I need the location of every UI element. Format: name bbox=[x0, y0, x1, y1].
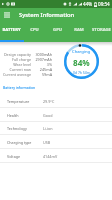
staticText: 4144mV bbox=[43, 154, 112, 159]
button[interactable]: BATTERY bbox=[0, 22, 23, 40]
staticText: Health bbox=[7, 113, 43, 118]
staticText: Temperature bbox=[7, 99, 43, 104]
staticText: 09:54 bbox=[98, 1, 110, 7]
button[interactable]: Health bbox=[0, 108, 112, 122]
button[interactable]: STORAGE bbox=[90, 22, 112, 40]
staticText: RAM bbox=[74, 27, 84, 33]
staticText: Li-ion bbox=[43, 126, 112, 131]
staticText: Full charge bbox=[0, 57, 31, 62]
staticText: BATTERY bbox=[2, 27, 21, 33]
staticText: 3% bbox=[34, 62, 52, 67]
staticText: Charging type bbox=[7, 140, 43, 145]
staticText: Battery information bbox=[3, 85, 36, 90]
staticText: Current now bbox=[0, 67, 31, 72]
staticText: STORAGE bbox=[92, 27, 111, 33]
staticText: Good bbox=[43, 113, 112, 118]
staticText: 3000mAh bbox=[34, 52, 52, 57]
staticText: Design capacity bbox=[0, 52, 31, 57]
staticText: 44% bbox=[83, 1, 93, 7]
staticText: 59mA bbox=[34, 72, 52, 77]
button[interactable]: RAM bbox=[68, 22, 90, 40]
staticText: 2907mAh bbox=[34, 57, 52, 62]
staticText: 84% bbox=[73, 57, 90, 68]
staticText: 245mA bbox=[34, 67, 52, 72]
staticText: 29.9°C bbox=[43, 99, 112, 104]
button[interactable]: CPU bbox=[23, 22, 46, 40]
staticText: Charging bbox=[72, 49, 91, 55]
button[interactable]: Technology bbox=[0, 121, 112, 135]
staticText: Current average bbox=[0, 72, 31, 77]
button[interactable]: Open navigation drawer bbox=[0, 8, 14, 22]
staticText: CPU bbox=[30, 27, 39, 33]
staticText: Technology bbox=[7, 126, 43, 131]
staticText: USB bbox=[43, 140, 112, 145]
staticText: System Information bbox=[19, 11, 75, 19]
staticText: 0d 7h 54m bbox=[73, 70, 90, 75]
button[interactable]: Charging type bbox=[0, 135, 112, 149]
staticText: GPU bbox=[53, 27, 62, 33]
button[interactable]: Temperature bbox=[0, 94, 112, 108]
staticText: Voltage bbox=[7, 154, 43, 159]
button[interactable]: GPU bbox=[46, 22, 68, 40]
button[interactable]: Voltage bbox=[0, 149, 112, 163]
staticText: Wear level bbox=[0, 62, 31, 67]
